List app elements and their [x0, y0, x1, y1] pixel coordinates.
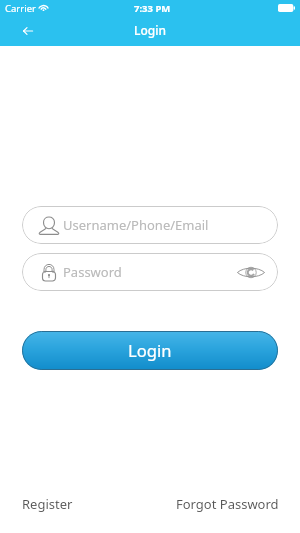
button[interactable]: Login — [22, 331, 278, 370]
button[interactable]: Password — [22, 253, 278, 291]
staticText: Carrier — [5, 2, 36, 15]
button[interactable]: Forgot Password — [176, 495, 279, 513]
staticText: Password — [63, 263, 122, 281]
staticText: Username/Phone/Email — [63, 216, 209, 234]
button[interactable]: Register — [22, 495, 73, 513]
staticText: Login — [134, 22, 166, 38]
button[interactable]: Back — [16, 19, 39, 42]
staticText: 7:33 PM — [134, 2, 171, 15]
staticText: Login — [128, 339, 172, 362]
button[interactable]: Username/Phone/Email — [22, 206, 278, 244]
